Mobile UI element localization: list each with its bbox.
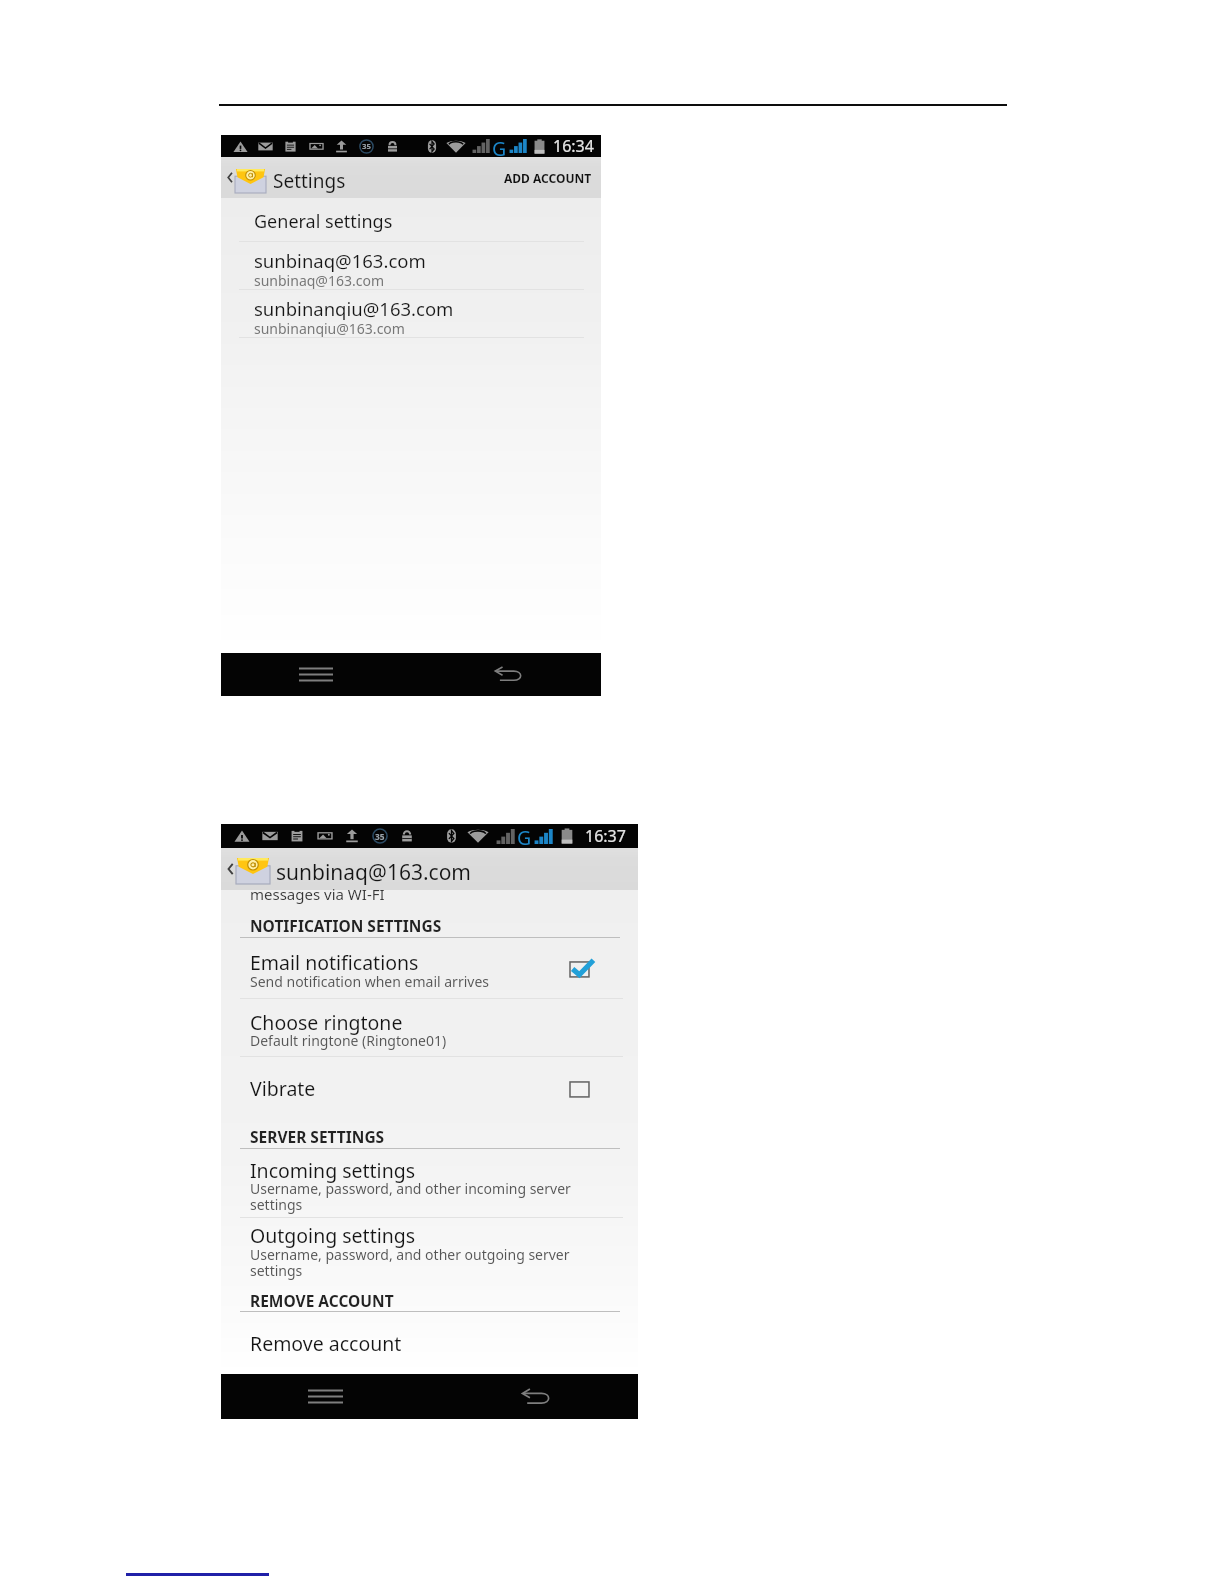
button[interactable]: Navigate up [221,848,274,890]
staticText: sunbinanqiu@163.com [254,319,405,338]
staticText: Email notifications [250,949,419,976]
staticText: Remove account [250,1330,402,1357]
button[interactable]: Recent apps [221,653,411,696]
button[interactable]: Enabled [570,958,596,980]
staticText: Send notification when email arrives [250,972,489,991]
staticText: ADD ACCOUNT [504,170,592,186]
staticText: 35 [362,141,371,152]
staticText: sunbinanqiu@163.com [254,296,454,321]
button[interactable]: sunbinanqiu@163.com [221,290,601,337]
staticText: Username, password, and other incoming s… [250,1179,571,1214]
staticText: Vibrate [250,1075,316,1102]
button[interactable]: Disabled [570,1078,596,1100]
staticText: G [517,824,532,848]
staticText: General settings [254,209,393,234]
button[interactable]: Outgoing settings [221,1219,638,1283]
staticText: Incoming settings [250,1157,416,1184]
button[interactable]: Back [411,653,601,696]
staticText: 16:37 [585,825,626,847]
staticText: SERVER SETTINGS [250,1126,385,1147]
staticText: Username, password, and other outgoing s… [250,1245,570,1280]
button[interactable]: Recent apps [221,1374,429,1419]
button[interactable]: Incoming settings [221,1153,638,1217]
button[interactable]: Choose ringtone [221,1002,638,1056]
staticText: REMOVE ACCOUNT [250,1290,394,1311]
staticText: Default ringtone (Ringtone01) [250,1031,447,1050]
staticText: 16:34 [553,135,594,157]
button[interactable]: Navigate up [221,157,271,198]
staticText: 35 [375,831,385,842]
staticText: sunbinaq@163.com [254,248,426,273]
staticText: sunbinaq@163.com [254,271,384,290]
button[interactable]: General settings [221,191,601,230]
button[interactable]: sunbinaq@163.com [221,242,601,289]
staticText: messages via WI-FI [250,884,385,904]
button[interactable]: ADD ACCOUNT [490,157,601,198]
staticText: Choose ringtone [250,1009,403,1036]
staticText: NOTIFICATION SETTINGS [250,915,442,936]
staticText: sunbinaq@163.com [276,858,471,887]
button[interactable]: Vibrate [221,1062,638,1110]
button[interactable]: Back [429,1374,638,1419]
staticText: Settings [273,168,346,194]
staticText: G [492,135,507,157]
button[interactable]: Remove account [221,1319,638,1367]
button[interactable]: Email notifications [221,942,638,998]
staticText: Outgoing settings [250,1222,416,1249]
